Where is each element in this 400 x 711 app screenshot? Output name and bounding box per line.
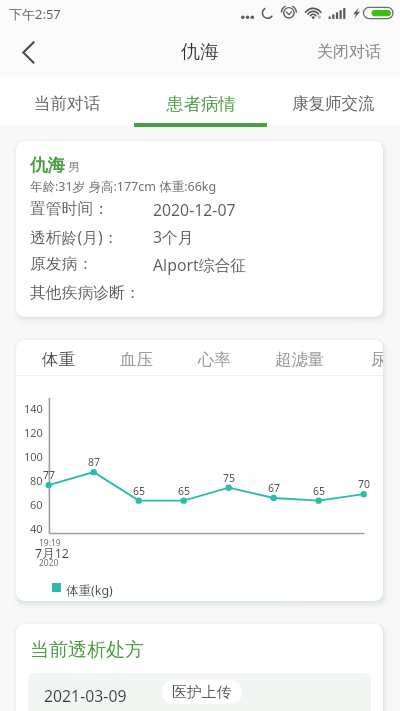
staticText: 医护上传	[172, 683, 232, 702]
staticText: 当前透析处方	[30, 638, 144, 662]
button[interactable]: 心率	[198, 342, 231, 377]
staticText: 原发病：	[30, 254, 94, 274]
staticText: 2020-12-07	[153, 199, 236, 221]
staticText: 67	[268, 481, 281, 495]
staticText: 下午2:57	[9, 5, 61, 23]
staticText: 心率	[198, 349, 231, 370]
staticText: 血压	[120, 349, 153, 370]
staticText: 关闭对话	[317, 42, 381, 62]
staticText: 仇海	[181, 40, 219, 64]
button[interactable]: Back	[4, 28, 52, 76]
staticText: 体重	[42, 349, 75, 370]
staticText: 87	[88, 455, 101, 469]
staticText: 7月12	[35, 545, 69, 562]
staticText: 40	[30, 521, 43, 536]
button[interactable]: 患者病情	[134, 76, 267, 125]
staticText: 2020	[39, 557, 59, 569]
button[interactable]: 血压	[120, 342, 153, 377]
staticText: 2021-03-09	[44, 685, 127, 707]
button[interactable]: 尿	[371, 342, 383, 377]
button[interactable]: 超滤量	[275, 342, 325, 377]
staticText: 70	[358, 477, 371, 491]
staticText: 100	[24, 449, 43, 464]
staticText: 120	[24, 425, 43, 440]
staticText: 140	[24, 401, 43, 416]
staticText: 60	[30, 497, 43, 512]
button[interactable]: 2021-03-09	[28, 673, 371, 711]
button[interactable]: 关闭对话	[309, 34, 389, 70]
staticText: 仇海	[30, 154, 65, 176]
staticText: 其他疾病诊断：	[30, 283, 141, 303]
staticText: 3个月	[153, 226, 194, 248]
staticText: 尿	[371, 349, 383, 370]
staticText: 年龄:31岁 身高:177cm 体重:66kg	[30, 178, 217, 195]
button[interactable]: 康复师交流	[267, 76, 400, 125]
staticText: 康复师交流	[292, 93, 375, 114]
staticText: 超滤量	[275, 349, 325, 370]
staticText: 75	[223, 471, 236, 485]
staticText: 透析龄(月)：	[30, 226, 119, 248]
staticText: 男	[68, 159, 80, 174]
button[interactable]: 当前对话	[0, 76, 133, 125]
staticText: 当前对话	[34, 93, 100, 114]
staticText: Alport综合征	[153, 254, 247, 276]
staticText: 65	[178, 484, 191, 498]
button[interactable]: 体重	[42, 342, 75, 377]
staticText: 体重(kg)	[66, 582, 113, 599]
staticText: 患者病情	[166, 93, 236, 115]
staticText: 80	[30, 473, 43, 488]
staticText: 65	[313, 484, 326, 498]
staticText: 19:19	[39, 537, 61, 549]
staticText: 置管时间：	[30, 199, 109, 219]
staticText: 65	[133, 484, 146, 498]
staticText: 77	[43, 468, 56, 482]
